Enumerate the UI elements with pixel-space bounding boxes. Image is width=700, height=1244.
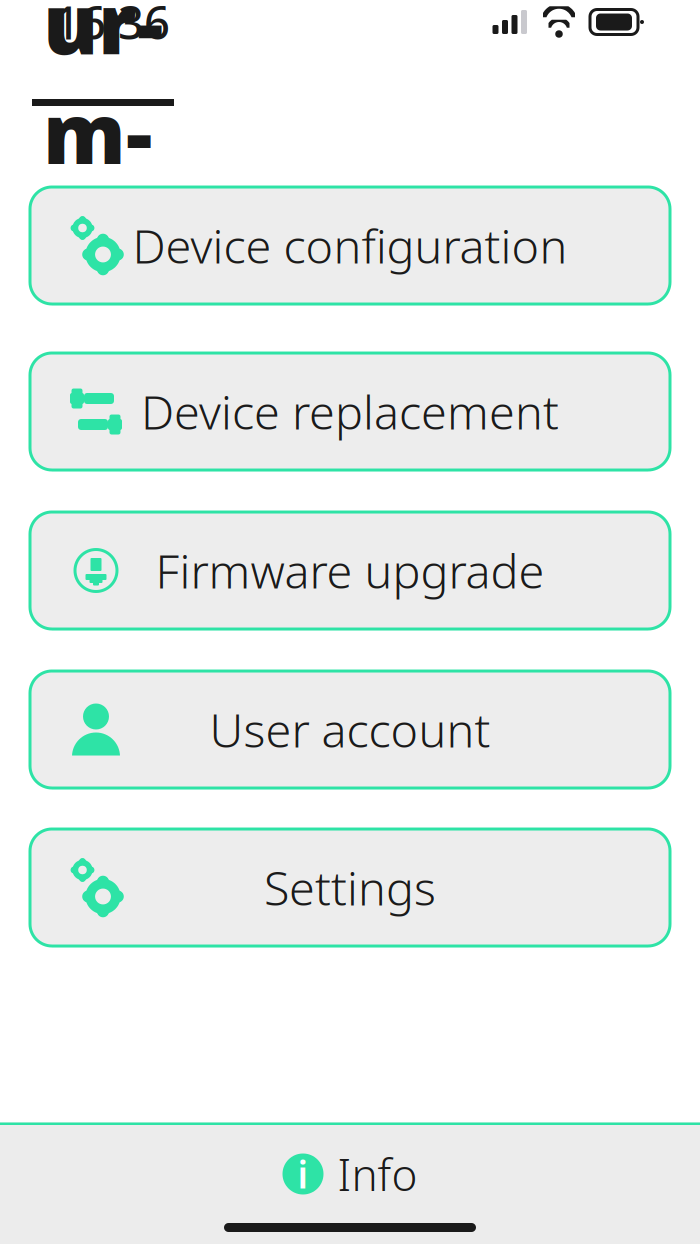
- staticText: Firmware upgrade: [155, 539, 544, 601]
- button[interactable]: Firmware upgrade: [30, 512, 670, 629]
- button[interactable]: Device replacement: [30, 353, 670, 470]
- staticText: urmet: [43, 0, 163, 297]
- staticText: Device configuration: [132, 214, 567, 276]
- staticText: Info: [337, 1145, 417, 1203]
- button[interactable]: Settings: [30, 829, 670, 946]
- staticText: User account: [209, 698, 490, 760]
- staticText: Device replacement: [141, 380, 559, 442]
- staticText: Settings: [264, 856, 436, 918]
- button[interactable]: Device configuration: [30, 187, 670, 304]
- staticText: i: [297, 1149, 308, 1199]
- staticText: 16:36: [54, 0, 170, 52]
- button[interactable]: User account: [30, 671, 670, 788]
- button[interactable]: i: [264, 1135, 435, 1213]
